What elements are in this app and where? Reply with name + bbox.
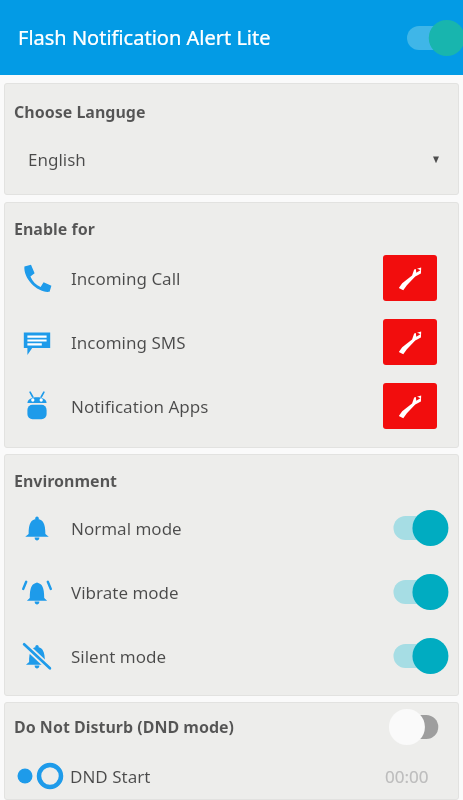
staticText: Silent mode	[71, 645, 166, 668]
button[interactable]: Vibrate mode	[4, 560, 459, 624]
staticText: Normal mode	[71, 517, 182, 540]
staticText: Environment	[14, 470, 118, 492]
staticText: Do Not Disturb (DND mode)	[14, 716, 234, 738]
staticText: Notification Apps	[71, 395, 209, 418]
staticText: Choose Languge	[14, 101, 146, 123]
button[interactable]: English	[4, 123, 459, 195]
button[interactable]: Do Not Disturb toggle	[389, 707, 445, 747]
button[interactable]: Silent mode toggle	[389, 636, 445, 676]
button[interactable]: Incoming Call	[4, 246, 459, 310]
button[interactable]: Settings for Incoming SMS	[383, 319, 437, 365]
button[interactable]: DND Start	[4, 752, 459, 800]
staticText: 00:00	[385, 765, 429, 788]
button[interactable]: Normal mode toggle	[389, 508, 445, 548]
button[interactable]: Incoming SMS	[4, 310, 459, 374]
staticText: Vibrate mode	[71, 581, 179, 604]
button[interactable]: Settings for Incoming Call	[383, 255, 437, 301]
button[interactable]: Silent mode	[4, 624, 459, 688]
staticText: English	[28, 148, 86, 171]
button[interactable]: Notification Apps	[4, 374, 459, 438]
staticText: Flash Notification Alert Lite	[18, 24, 271, 51]
button[interactable]: Vibrate mode toggle	[389, 572, 445, 612]
button[interactable]: Do Not Disturb (DND mode)	[4, 702, 459, 752]
staticText: Incoming Call	[71, 267, 181, 290]
staticText: DND Start	[70, 765, 151, 788]
button[interactable]: Enable flash alerts	[405, 17, 463, 59]
button[interactable]: Settings for Notification Apps	[383, 383, 437, 429]
staticText: Incoming SMS	[71, 331, 186, 354]
button[interactable]: Normal mode	[4, 496, 459, 560]
staticText: Enable for	[14, 218, 95, 240]
